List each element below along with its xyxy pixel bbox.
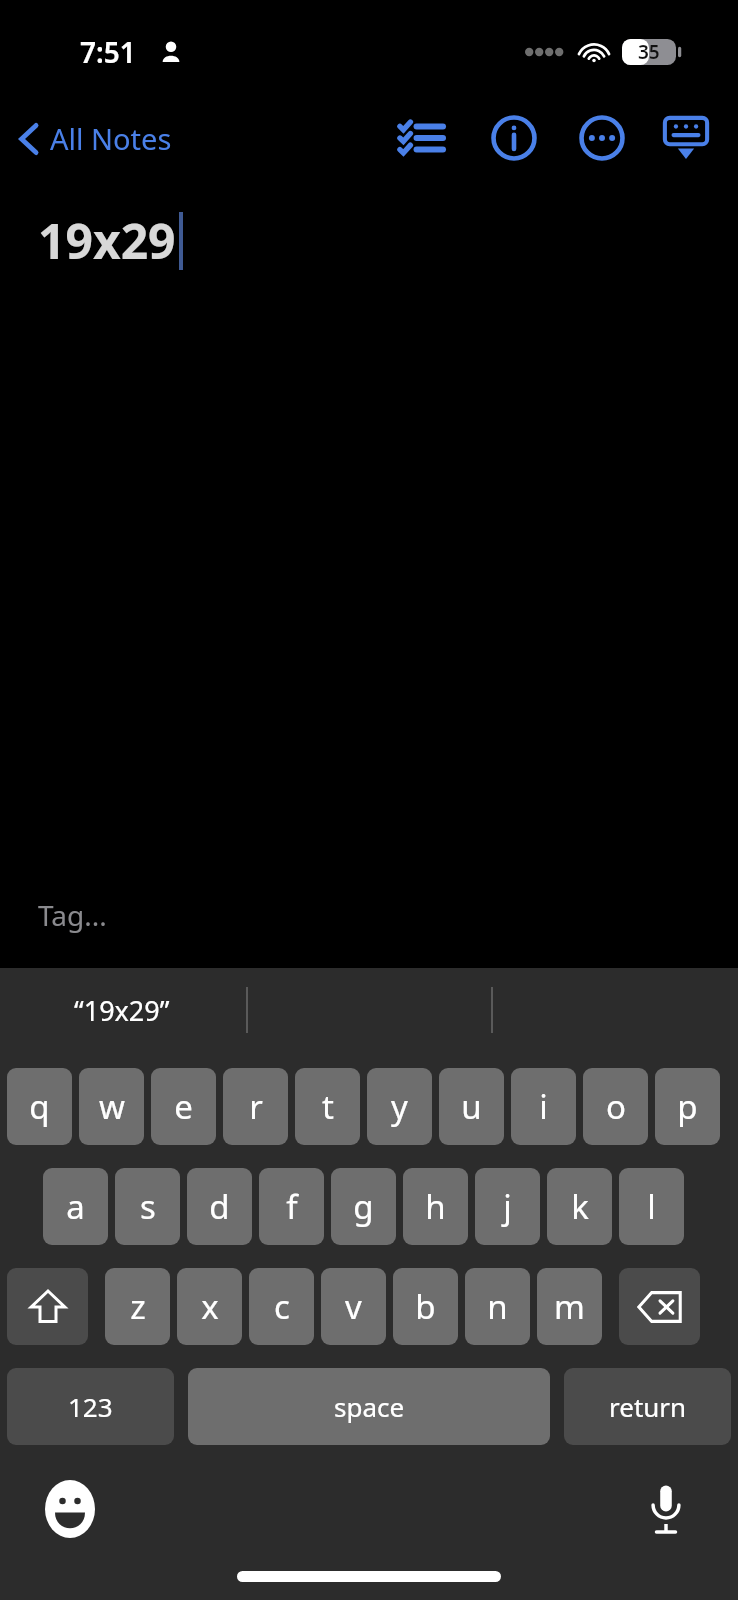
staticText: o (606, 1084, 626, 1129)
button[interactable]: return (564, 1368, 731, 1445)
button[interactable]: 123 (7, 1368, 174, 1445)
button[interactable]: u (439, 1068, 504, 1145)
staticText: i (539, 1084, 548, 1129)
button[interactable]: i (511, 1068, 576, 1145)
staticText: return (609, 1389, 687, 1424)
button[interactable]: r (223, 1068, 288, 1145)
button[interactable]: k (547, 1168, 612, 1245)
button[interactable]: p (655, 1068, 720, 1145)
staticText: d (209, 1184, 230, 1229)
staticText: m (554, 1284, 585, 1329)
staticText: z (130, 1284, 146, 1329)
staticText: a (66, 1184, 85, 1229)
staticText: k (571, 1184, 589, 1229)
button[interactable]: w (79, 1068, 144, 1145)
button[interactable]: c (249, 1268, 314, 1345)
staticText: j (503, 1184, 512, 1229)
button[interactable]: Shift (7, 1268, 88, 1345)
button[interactable]: “19x29” (74, 992, 170, 1029)
button[interactable]: g (331, 1168, 396, 1245)
staticText: w (99, 1084, 125, 1129)
button[interactable]: space (188, 1368, 550, 1445)
staticText: 35 (638, 39, 660, 65)
button[interactable]: a (43, 1168, 108, 1245)
button[interactable]: j (475, 1168, 540, 1245)
staticText: t (322, 1084, 334, 1129)
button[interactable]: z (105, 1268, 170, 1345)
staticText: 123 (68, 1389, 113, 1424)
button[interactable]: Dictation (636, 1479, 696, 1539)
staticText: b (415, 1284, 436, 1329)
staticText: h (425, 1184, 446, 1229)
button[interactable]: All Notes (10, 113, 180, 164)
staticText: y (391, 1084, 408, 1129)
button[interactable]: o (583, 1068, 648, 1145)
button[interactable]: Info (482, 106, 546, 170)
staticText: All Notes (50, 119, 172, 158)
staticText: x (201, 1284, 219, 1329)
staticText: c (274, 1284, 290, 1329)
staticText: v (345, 1284, 362, 1329)
button[interactable]: Hide keyboard (654, 106, 718, 170)
staticText: u (461, 1084, 482, 1129)
staticText: g (353, 1184, 374, 1229)
staticText: r (249, 1084, 263, 1129)
button[interactable]: s (115, 1168, 180, 1245)
button[interactable]: l (619, 1168, 684, 1245)
button[interactable]: f (259, 1168, 324, 1245)
staticText: s (140, 1184, 156, 1229)
staticText: l (647, 1184, 656, 1229)
staticText: space (334, 1389, 405, 1424)
staticText: 19x29 (38, 208, 176, 273)
button[interactable]: q (7, 1068, 72, 1145)
button[interactable]: y (367, 1068, 432, 1145)
staticText: f (286, 1184, 298, 1229)
button[interactable]: x (177, 1268, 242, 1345)
button[interactable]: More (570, 106, 634, 170)
staticText: 7:51 (80, 33, 136, 71)
button[interactable]: Backspace (619, 1268, 700, 1345)
button[interactable]: h (403, 1168, 468, 1245)
button[interactable]: d (187, 1168, 252, 1245)
button[interactable]: n (465, 1268, 530, 1345)
staticText: e (174, 1084, 193, 1129)
button[interactable]: e (151, 1068, 216, 1145)
staticText: p (677, 1084, 698, 1129)
button[interactable]: Checklist (384, 101, 458, 175)
button[interactable]: m (537, 1268, 602, 1345)
button[interactable]: t (295, 1068, 360, 1145)
staticText: q (29, 1084, 50, 1129)
staticText: Tag... (38, 896, 107, 934)
button[interactable]: Emoji (40, 1479, 100, 1539)
button[interactable]: b (393, 1268, 458, 1345)
button[interactable]: v (321, 1268, 386, 1345)
staticText: n (487, 1284, 508, 1329)
